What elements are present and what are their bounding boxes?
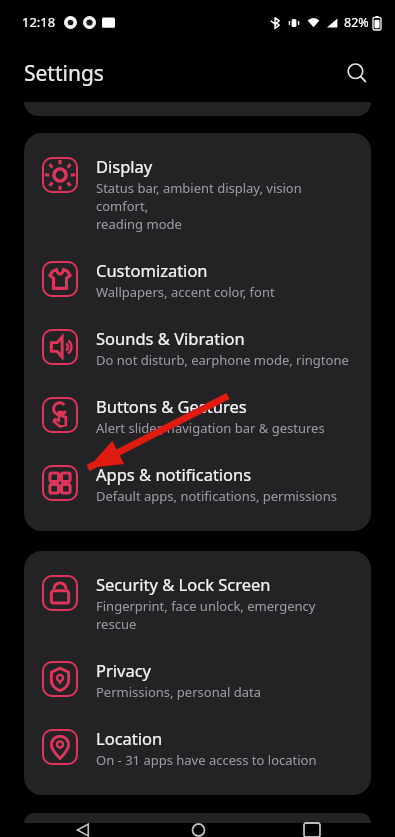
other: Sounds and Vibration xyxy=(42,329,78,365)
other: Location xyxy=(42,729,78,765)
button[interactable]: Privacy xyxy=(24,647,371,715)
staticText: Alert slider, navigation bar & gestures xyxy=(96,419,325,437)
staticText: Sounds & Vibration xyxy=(96,327,245,349)
staticText: Security & Lock Screen xyxy=(96,573,271,595)
staticText: 82% xyxy=(344,14,369,31)
button[interactable]: Recents xyxy=(289,823,335,837)
staticText: Default apps, notifications, permissions xyxy=(96,487,337,505)
other: Display xyxy=(42,157,78,193)
button[interactable]: Location xyxy=(24,715,371,795)
other: Customization xyxy=(42,261,78,297)
staticText: Fingerprint, face unlock, emergency resc… xyxy=(96,597,355,633)
other: Privacy xyxy=(42,661,78,697)
button[interactable]: Display xyxy=(24,133,371,247)
button[interactable]: Back xyxy=(60,823,106,837)
staticText: Display xyxy=(96,155,153,177)
button[interactable]: Search xyxy=(337,53,377,93)
other: Apps and notifications xyxy=(42,465,78,501)
button[interactable]: Customization xyxy=(24,247,371,315)
staticText: Location xyxy=(96,727,163,749)
staticText: Settings xyxy=(24,59,104,88)
button[interactable]: Home xyxy=(175,823,221,837)
staticText: 12:18 xyxy=(22,13,56,31)
staticText: Wallpapers, accent color, font xyxy=(96,283,275,301)
button[interactable]: Sounds and Vibration xyxy=(24,315,371,383)
staticText: Permissions, personal data xyxy=(96,683,261,701)
button[interactable] xyxy=(24,813,371,823)
staticText: Customization xyxy=(96,259,208,281)
staticText: Do not disturb, earphone mode, ringtone xyxy=(96,351,349,369)
button[interactable]: Buttons and Gestures xyxy=(24,383,371,451)
button[interactable] xyxy=(24,102,371,116)
staticText: Buttons & Gestures xyxy=(96,395,247,417)
other: Buttons and Gestures xyxy=(42,397,78,433)
staticText: Status bar, ambient display, vision comf… xyxy=(96,179,355,233)
staticText: Privacy xyxy=(96,659,152,681)
button[interactable]: Apps and notifications xyxy=(24,451,371,531)
staticText: On - 31 apps have access to location xyxy=(96,751,317,769)
staticText: Apps & notifications xyxy=(96,463,252,485)
other: Security and Lock Screen xyxy=(42,575,78,611)
button[interactable]: Security and Lock Screen xyxy=(24,551,371,647)
